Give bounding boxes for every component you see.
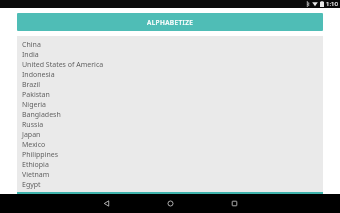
- staticText: Japan: [22, 130, 41, 140]
- button[interactable]: India: [22, 50, 323, 60]
- button[interactable]: Brazil: [22, 80, 323, 90]
- staticText: Brazil: [22, 80, 41, 90]
- button[interactable]: Pakistan: [22, 90, 323, 100]
- button[interactable]: China: [22, 40, 323, 50]
- button[interactable]: ALPHABETIZE: [17, 13, 323, 31]
- staticText: China: [22, 40, 41, 50]
- button[interactable]: Bangladesh: [22, 110, 323, 120]
- staticText: India: [22, 50, 39, 60]
- button[interactable]: Russia: [22, 120, 323, 130]
- staticText: Bangladesh: [22, 110, 61, 120]
- staticText: Ethiopia: [22, 160, 49, 170]
- staticText: United States of America: [22, 60, 104, 70]
- button[interactable]: Home: [160, 194, 180, 213]
- staticText: Indonesia: [22, 70, 55, 80]
- staticText: ALPHABETIZE: [147, 18, 194, 27]
- staticText: Vietnam: [22, 170, 50, 180]
- staticText: Pakistan: [22, 90, 50, 100]
- button[interactable]: Back: [96, 194, 116, 213]
- button[interactable]: Recent apps: [224, 194, 244, 213]
- button[interactable]: United States of America: [22, 60, 323, 70]
- button[interactable]: Nigeria: [22, 100, 323, 110]
- button[interactable]: Philippines: [22, 150, 323, 160]
- staticText: 1:10: [326, 0, 338, 8]
- button[interactable]: China: [17, 36, 323, 192]
- staticText: Russia: [22, 120, 44, 130]
- button[interactable]: Indonesia: [22, 70, 323, 80]
- staticText: Egypt: [22, 180, 41, 190]
- button[interactable]: Mexico: [22, 140, 323, 150]
- button[interactable]: Egypt: [22, 180, 323, 190]
- staticText: Nigeria: [22, 100, 47, 110]
- button[interactable]: Ethiopia: [22, 160, 323, 170]
- button[interactable]: Japan: [22, 130, 323, 140]
- staticText: Mexico: [22, 140, 46, 150]
- button[interactable]: Vietnam: [22, 170, 323, 180]
- staticText: Philippines: [22, 150, 59, 160]
